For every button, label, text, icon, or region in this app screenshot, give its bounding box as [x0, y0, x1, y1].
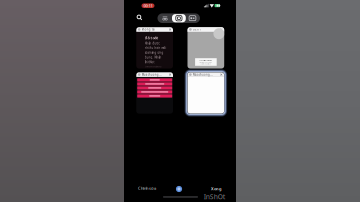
staticText: sit amet, consectetur	[199, 61, 212, 63]
staticText: InShOt	[204, 192, 226, 201]
button[interactable]: Tabs	[172, 13, 186, 23]
button[interactable]: Tab groups	[185, 13, 199, 23]
button[interactable]: Xong	[211, 185, 222, 192]
button[interactable]: Mua chuong...	[187, 72, 224, 114]
staticText: sửa hàng ứng	[145, 51, 164, 54]
staticText: đã toát	[145, 35, 159, 40]
button[interactable]: Mua chuong...	[136, 72, 173, 114]
staticText: Cảm nhận không tải hàng	[145, 66, 162, 68]
staticText: ShitNot	[145, 60, 155, 64]
staticText: adipiscing elit sed	[200, 63, 211, 65]
staticText: nhiều hơn mỗi	[145, 46, 167, 50]
button[interactable]: Search	[136, 14, 145, 23]
button[interactable]: New tab	[174, 184, 184, 194]
staticText: tien 1	[193, 28, 202, 31]
staticText: Chỉnh sửa	[138, 185, 156, 191]
staticText: Nhận được	[145, 42, 160, 45]
button[interactable]: Private browsing	[158, 13, 172, 23]
staticText: Mua chuong...	[193, 73, 213, 76]
staticText: dụng. Nhận	[145, 56, 162, 59]
staticText: 00:11	[143, 3, 152, 8]
staticText: Mua chuong...	[142, 73, 162, 76]
button[interactable]: tien 1	[187, 27, 224, 68]
staticText: Xong	[211, 186, 222, 191]
button[interactable]: khong tai	[136, 27, 173, 68]
button[interactable]: Chỉnh sửa	[138, 185, 158, 192]
staticText: Lorem ipsum dolor	[199, 60, 212, 61]
staticText: khong tai	[142, 28, 155, 31]
